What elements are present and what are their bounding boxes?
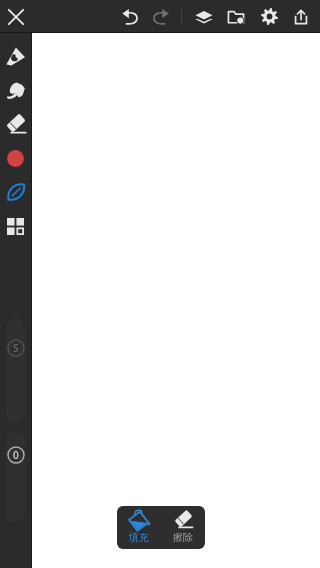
button[interactable]: Grid bbox=[0, 209, 31, 243]
button[interactable]: Shape bbox=[0, 175, 31, 209]
staticText: 填充 bbox=[129, 531, 149, 544]
button[interactable]: Gallery bbox=[222, 3, 250, 31]
button[interactable]: Color bbox=[0, 141, 31, 175]
button[interactable]: 填充 bbox=[117, 506, 161, 549]
staticText: 擦除 bbox=[173, 531, 193, 544]
staticText: 0 bbox=[13, 448, 19, 462]
button[interactable]: Undo bbox=[117, 3, 144, 30]
button[interactable]: Settings bbox=[256, 3, 283, 30]
button[interactable]: 擦除 bbox=[161, 506, 205, 549]
button[interactable]: Opacity bbox=[6, 432, 25, 523]
button[interactable]: Close bbox=[4, 5, 28, 29]
button[interactable]: Layers bbox=[190, 3, 218, 31]
button[interactable]: Brush bbox=[0, 39, 31, 73]
staticText: S bbox=[13, 341, 19, 355]
button[interactable]: Redo bbox=[147, 3, 174, 30]
button[interactable]: Smudge bbox=[0, 73, 31, 107]
button[interactable]: Brush size bbox=[6, 318, 25, 423]
button[interactable]: Share bbox=[288, 4, 314, 30]
button[interactable]: Eraser bbox=[0, 107, 31, 141]
